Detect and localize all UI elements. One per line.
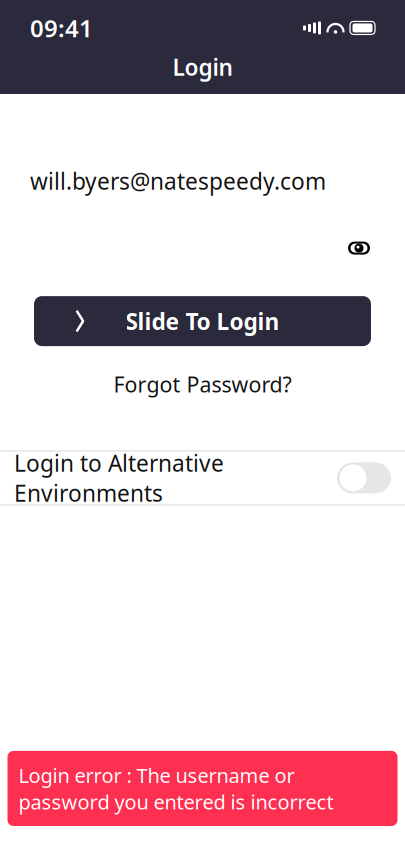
button[interactable]: Show password <box>337 226 381 270</box>
button[interactable]: Slide To Login <box>34 296 371 346</box>
staticText: Login <box>172 52 232 82</box>
staticText: 09:41 <box>30 12 93 44</box>
staticText: Slide To Login <box>125 306 279 336</box>
staticText: will.byers@natespeedy.com <box>30 166 326 196</box>
staticText: Login error : The username or password y… <box>18 762 333 815</box>
button[interactable]: Forgot Password? <box>97 362 307 406</box>
staticText: Forgot Password? <box>113 370 291 398</box>
staticText: Login to Alternative Environments <box>14 448 224 508</box>
button[interactable]: Login to Alternative Environments <box>0 451 405 504</box>
